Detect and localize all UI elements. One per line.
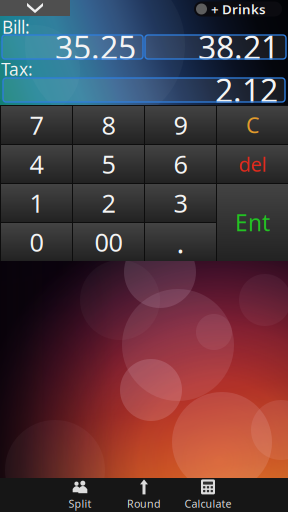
- button[interactable]: 2: [73, 184, 144, 222]
- staticText: 3: [173, 186, 187, 220]
- button[interactable]: C: [217, 106, 288, 144]
- staticText: .: [176, 222, 184, 261]
- staticText: Bill:: [2, 15, 30, 38]
- button[interactable]: 3: [145, 184, 216, 222]
- button[interactable]: Calculate: [183, 480, 233, 510]
- button[interactable]: + Drinks: [194, 1, 282, 16]
- staticText: 0: [29, 225, 43, 259]
- staticText: Ent: [235, 207, 270, 237]
- staticText: + Drinks: [211, 0, 266, 18]
- button[interactable]: 4: [1, 145, 72, 183]
- staticText: 8: [101, 108, 115, 142]
- staticText: 2.12: [215, 69, 278, 111]
- button[interactable]: 5: [73, 145, 144, 183]
- staticText: C: [246, 111, 259, 139]
- staticText: 2: [101, 186, 115, 220]
- button[interactable]: del: [217, 145, 288, 183]
- staticText: 00: [94, 225, 122, 259]
- staticText: 1: [29, 186, 43, 220]
- button[interactable]: Collapse keypad: [0, 0, 70, 16]
- staticText: Round: [127, 496, 161, 511]
- button[interactable]: .: [145, 223, 216, 261]
- button[interactable]: 0: [1, 223, 72, 261]
- staticText: 35.25: [55, 26, 136, 68]
- button[interactable]: 6: [145, 145, 216, 183]
- button[interactable]: 8: [73, 106, 144, 144]
- staticText: 6: [173, 147, 187, 181]
- staticText: 4: [29, 147, 43, 181]
- staticText: 38.21: [198, 26, 279, 68]
- button[interactable]: 38.21: [145, 35, 286, 59]
- staticText: 9: [173, 108, 187, 142]
- button[interactable]: Split: [55, 480, 105, 510]
- button[interactable]: 1: [1, 184, 72, 222]
- staticText: Tax:: [1, 57, 33, 80]
- button[interactable]: Ent: [217, 184, 288, 261]
- button[interactable]: 7: [1, 106, 72, 144]
- button[interactable]: 00: [73, 223, 144, 261]
- button[interactable]: 35.25: [2, 35, 143, 59]
- staticText: Calculate: [184, 496, 231, 511]
- button[interactable]: 2.12: [3, 78, 285, 102]
- staticText: 7: [29, 108, 43, 142]
- staticText: del: [238, 151, 266, 177]
- button[interactable]: Round: [119, 480, 169, 510]
- staticText: 5: [101, 147, 115, 181]
- button[interactable]: 9: [145, 106, 216, 144]
- staticText: Split: [68, 496, 91, 511]
